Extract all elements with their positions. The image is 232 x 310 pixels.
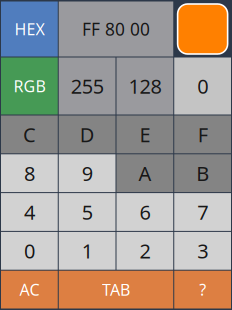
staticText: 1 bbox=[82, 237, 93, 264]
staticText: 5 bbox=[82, 199, 93, 225]
staticText: AC bbox=[19, 279, 39, 300]
button[interactable]: TAB bbox=[59, 271, 173, 308]
button[interactable]: F bbox=[174, 115, 231, 153]
button[interactable]: 4 bbox=[1, 193, 58, 231]
staticText: RGB bbox=[13, 75, 45, 97]
button[interactable]: 255 bbox=[59, 57, 116, 114]
staticText: 7 bbox=[197, 199, 208, 225]
staticText: 3 bbox=[197, 237, 208, 264]
staticText: 6 bbox=[139, 199, 150, 225]
staticText: C bbox=[23, 121, 36, 148]
button[interactable]: C bbox=[1, 115, 58, 153]
button[interactable]: 2 bbox=[116, 232, 173, 270]
staticText: 0 bbox=[197, 73, 208, 99]
staticText: ? bbox=[199, 279, 206, 300]
staticText: 0 bbox=[24, 237, 35, 264]
button[interactable]: Colour preview bbox=[174, 1, 231, 56]
staticText: E bbox=[139, 121, 150, 148]
staticText: 2 bbox=[139, 237, 150, 264]
button[interactable]: B bbox=[174, 154, 231, 192]
staticText: F bbox=[198, 121, 208, 148]
staticText: TAB bbox=[102, 279, 130, 300]
button[interactable]: 0 bbox=[174, 57, 231, 114]
button[interactable]: 6 bbox=[116, 193, 173, 231]
staticText: 128 bbox=[128, 73, 161, 99]
button[interactable]: ? bbox=[174, 271, 231, 308]
button[interactable]: FF 80 00 bbox=[59, 1, 173, 56]
button[interactable]: RGB bbox=[1, 57, 58, 114]
button[interactable]: 5 bbox=[59, 193, 116, 231]
staticText: FF 80 00 bbox=[82, 17, 150, 40]
staticText: 9 bbox=[82, 160, 93, 186]
button[interactable]: AC bbox=[1, 271, 58, 308]
staticText: 255 bbox=[71, 73, 104, 99]
button[interactable]: 8 bbox=[1, 154, 58, 192]
button[interactable]: 9 bbox=[59, 154, 116, 192]
button[interactable]: 0 bbox=[1, 232, 58, 270]
staticText: HEX bbox=[14, 18, 44, 40]
button[interactable]: 1 bbox=[59, 232, 116, 270]
staticText: D bbox=[80, 121, 95, 148]
button[interactable]: D bbox=[59, 115, 116, 153]
staticText: 4 bbox=[24, 199, 35, 225]
button[interactable]: E bbox=[116, 115, 173, 153]
staticText: 8 bbox=[24, 160, 35, 186]
button[interactable]: 128 bbox=[116, 57, 173, 114]
staticText: B bbox=[196, 160, 209, 186]
button[interactable]: 7 bbox=[174, 193, 231, 231]
staticText: A bbox=[138, 160, 151, 186]
button[interactable]: HEX bbox=[1, 1, 58, 56]
button[interactable]: A bbox=[116, 154, 173, 192]
button[interactable]: 3 bbox=[174, 232, 231, 270]
